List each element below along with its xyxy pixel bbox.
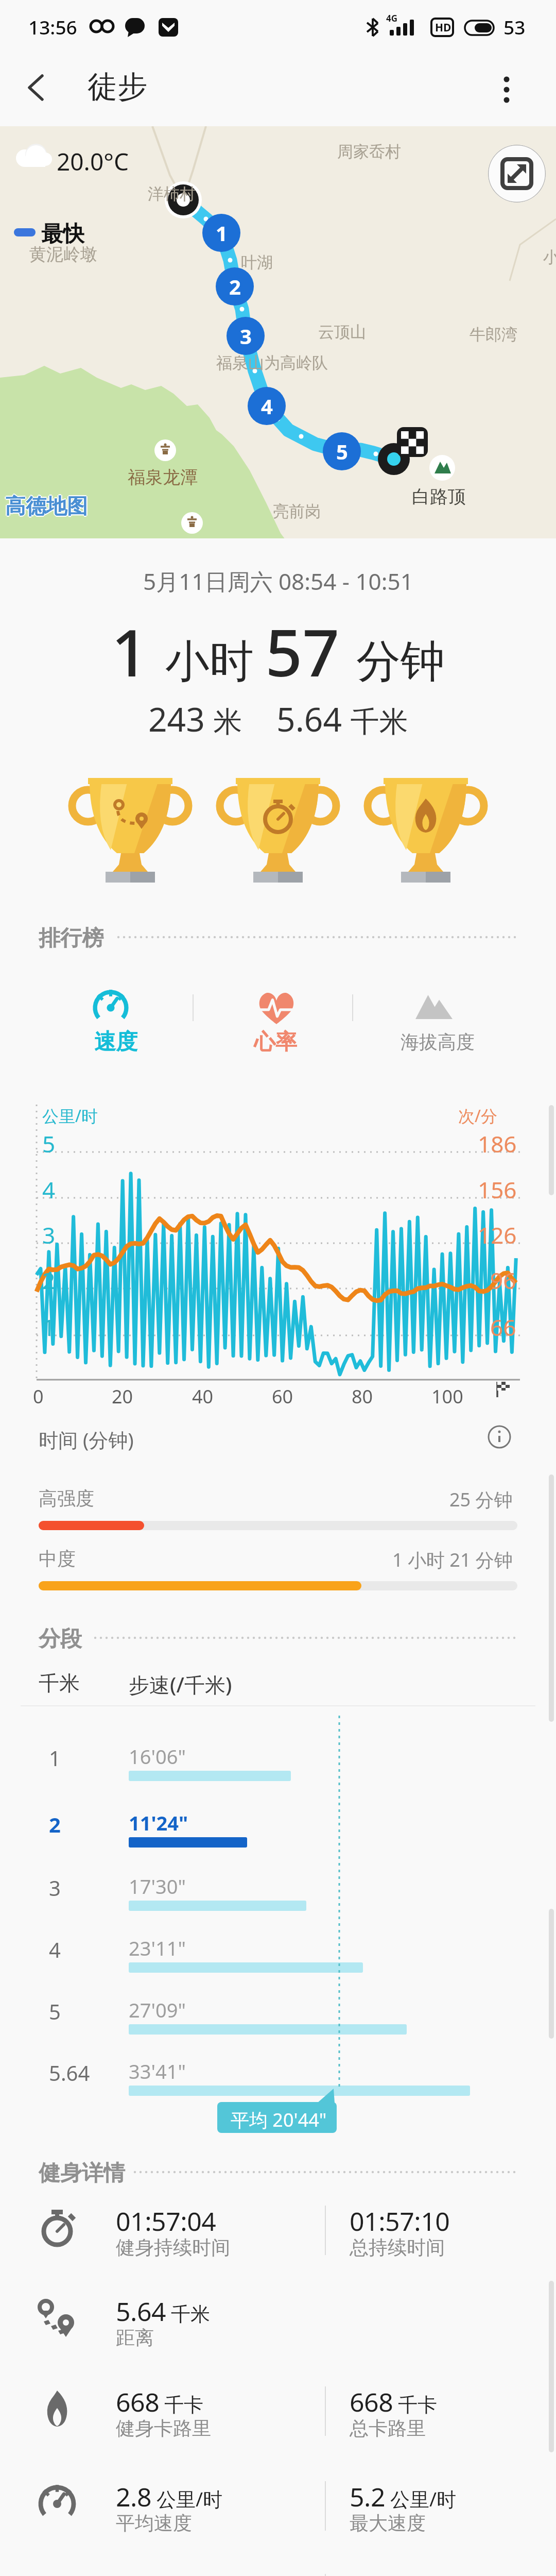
staticText: 156	[478, 1174, 517, 1205]
staticText: 4	[261, 392, 273, 420]
staticText: 次/分	[458, 1105, 497, 1127]
staticText: 23'11"	[129, 1935, 186, 1961]
staticText: 1	[49, 1744, 61, 1772]
staticText: 100	[431, 1384, 463, 1409]
staticText: 最大速度	[350, 2511, 426, 2535]
staticText: 4G	[386, 12, 398, 24]
staticText: 平均 20'44"	[231, 2107, 327, 2132]
staticText: 排行榜	[39, 925, 103, 952]
staticText: 33'41"	[129, 2058, 186, 2084]
staticText: 千米	[39, 1670, 80, 1696]
staticText: 叶湖	[241, 252, 273, 273]
staticText: 速度	[94, 1028, 137, 1056]
staticText: 洋柿村	[148, 184, 196, 204]
staticText: 健身详情	[39, 2160, 125, 2187]
staticText: 2	[42, 1265, 56, 1296]
staticText: 5月11日周六 08:54 - 10:51	[143, 566, 413, 597]
staticText: 高德地图	[5, 492, 88, 518]
staticText: 总卡路里	[350, 2416, 426, 2441]
staticText: 4	[42, 1174, 56, 1205]
staticText: 20	[112, 1384, 133, 1409]
staticText: 80	[352, 1384, 373, 1409]
staticText: 01:57:10	[350, 2204, 450, 2239]
staticText: 5.2 公里/时	[350, 2479, 457, 2514]
staticText: 高德地图	[4, 493, 86, 519]
staticText: 海拔高度	[401, 1030, 475, 1054]
staticText: 白路顶	[412, 485, 466, 508]
staticText: 徒步	[88, 68, 147, 106]
staticText: 4	[49, 1936, 61, 1963]
staticText: 5	[336, 437, 348, 465]
staticText: 96	[490, 1265, 516, 1296]
staticText: 186	[478, 1128, 517, 1159]
button[interactable]: 海拔高度	[358, 979, 517, 1066]
button[interactable]: 心率	[198, 979, 353, 1066]
button[interactable]	[359, 753, 493, 885]
staticText: 高德地图	[5, 494, 88, 520]
staticText: 2	[229, 273, 241, 300]
staticText: 1	[216, 219, 228, 247]
button[interactable]	[18, 67, 54, 103]
staticText: 243 米 5.64 千米	[148, 697, 408, 741]
staticText: 2	[49, 1810, 61, 1838]
staticText: 公里/时	[42, 1105, 98, 1127]
staticText: 1 小时 57 分钟	[111, 607, 445, 696]
button[interactable]	[63, 753, 197, 885]
button[interactable]: 速度	[39, 979, 193, 1066]
staticText: 2.8 公里/时	[116, 2479, 223, 2514]
staticText: 亮前岗	[273, 501, 321, 521]
staticText: 13:56	[28, 14, 77, 40]
staticText: 126	[478, 1219, 517, 1250]
staticText: 福泉龙潭	[128, 466, 198, 488]
staticText: 平均速度	[116, 2511, 192, 2535]
staticText: 66	[490, 1312, 516, 1343]
staticText: 高德地图	[5, 493, 88, 519]
button[interactable]	[488, 145, 546, 202]
staticText: 11'24"	[129, 1809, 188, 1836]
staticText: 27'09"	[129, 1996, 186, 2023]
staticText: 20.0°C	[57, 145, 129, 178]
staticText: 1 小时 21 分钟	[392, 1547, 513, 1572]
staticText: 健身卡路里	[116, 2416, 211, 2441]
staticText: 1	[42, 1312, 56, 1343]
staticText: 牛郎湾	[470, 325, 517, 345]
staticText: 5.64	[49, 2059, 90, 2087]
staticText: 小岭	[543, 247, 556, 267]
button[interactable]	[486, 1425, 517, 1455]
button[interactable]	[486, 64, 528, 113]
staticText: 中度	[39, 1547, 76, 1570]
staticText: 40	[192, 1384, 214, 1409]
staticText: 25 分钟	[449, 1487, 513, 1512]
staticText: 心率	[254, 1028, 297, 1056]
staticText: 668 千卡	[350, 2384, 438, 2419]
staticText: 01:57:04	[116, 2204, 216, 2239]
staticText: 周家岙村	[337, 142, 401, 162]
staticText: 668 千卡	[116, 2384, 204, 2419]
staticText: 时间 (分钟)	[39, 1426, 134, 1453]
staticText: HD	[435, 20, 451, 35]
staticText: 云顶山	[318, 322, 366, 342]
staticText: 17'30"	[129, 1873, 186, 1900]
staticText: 高强度	[39, 1487, 94, 1510]
staticText: 健身持续时间	[116, 2235, 230, 2260]
staticText: 分段	[39, 1625, 82, 1653]
staticText: 5.64 千米	[116, 2294, 211, 2329]
staticText: 3	[240, 322, 252, 350]
staticText: 5	[42, 1128, 56, 1159]
staticText: 3	[49, 1874, 61, 1902]
staticText: 距离	[116, 2326, 154, 2350]
staticText: 0	[33, 1384, 44, 1409]
staticText: 总持续时间	[350, 2235, 445, 2260]
staticText: 53	[503, 14, 526, 40]
staticText: 3	[42, 1219, 56, 1250]
staticText: 60	[272, 1384, 293, 1409]
staticText: 步速(/千米)	[129, 1670, 232, 1699]
button[interactable]	[211, 753, 345, 885]
staticText: 黄泥岭墩	[29, 244, 97, 265]
staticText: 高德地图	[6, 493, 89, 519]
staticText: 5	[49, 1997, 61, 2025]
staticText: 最快	[41, 221, 84, 248]
staticText: 福泉山为高岭队	[216, 353, 328, 373]
